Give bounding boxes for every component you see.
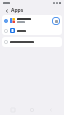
other: Selected: [4, 19, 8, 23]
button[interactable]: Selected: [2, 15, 62, 26]
staticText: Apps: [11, 7, 24, 14]
button[interactable]: App info: [52, 17, 60, 25]
button[interactable]: Back: [3, 7, 10, 14]
other: Not selected: [4, 29, 8, 33]
button[interactable]: Not selected: [2, 26, 62, 35]
other: Not selected: [4, 40, 8, 44]
button[interactable]: Not selected: [2, 37, 62, 47]
